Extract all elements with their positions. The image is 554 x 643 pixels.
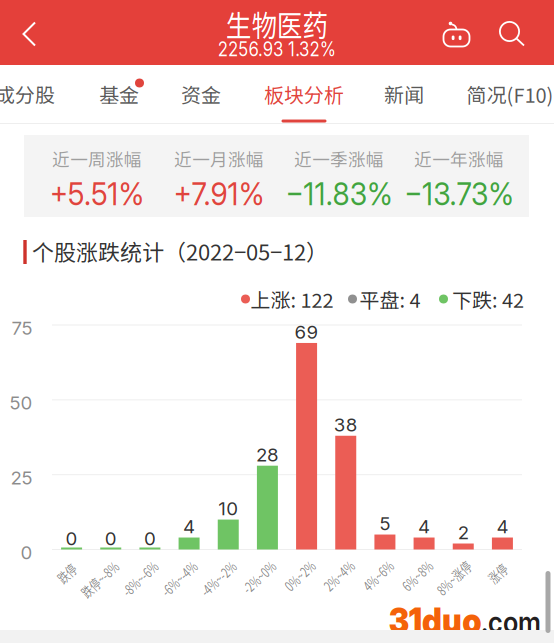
staticText: 板块分析 (264, 79, 344, 108)
staticText: 4 (183, 515, 195, 538)
staticText: +5.51% (42, 174, 152, 214)
staticText: 28 (256, 443, 279, 466)
staticText: +7.91% (166, 174, 272, 214)
staticText: 新闻 (384, 79, 424, 108)
staticText: 0 (66, 527, 78, 550)
staticText: −13.73% (395, 174, 523, 214)
staticText: 2%~4% (313, 565, 365, 586)
staticText: 0 (144, 527, 156, 550)
staticText: 69 (295, 321, 319, 343)
button[interactable]: 返回 (2, 1, 56, 66)
staticText: 8%~涨停 (424, 567, 484, 588)
staticText: 50 (9, 391, 32, 414)
button[interactable]: 板块分析 (256, 64, 352, 123)
staticText: 2256.93 1.32% (202, 36, 352, 62)
button[interactable]: 搜索 (487, 1, 537, 66)
staticText: 涨停 (483, 563, 513, 584)
staticText: 平盘: 4 (359, 284, 420, 313)
button[interactable]: 基金 (81, 64, 157, 123)
staticText: 生物医药 (213, 1, 341, 47)
staticText: 25 (10, 466, 32, 489)
button[interactable]: 智能助手 (432, 1, 482, 66)
button[interactable]: 资金 (163, 64, 239, 123)
staticText: 4 (418, 515, 430, 538)
staticText: 0 (105, 527, 117, 550)
staticText: 4%~6% (352, 565, 404, 586)
staticText: -8%~-6% (109, 568, 171, 589)
staticText: -2%~0% (230, 566, 287, 587)
staticText: 4 (496, 515, 508, 538)
staticText: 2 (458, 521, 469, 544)
staticText: -4%~-2% (187, 568, 249, 589)
staticText: 基金 (99, 79, 139, 108)
staticText: 跌停 (52, 563, 82, 584)
button[interactable]: 简况(F10) (455, 64, 554, 123)
button[interactable]: 新闻 (366, 64, 442, 123)
staticText: 0%~2% (274, 565, 326, 586)
staticText: 0 (20, 541, 32, 564)
staticText: 上涨: 122 (250, 284, 333, 313)
staticText: 个股涨跌统计（2022−05−12） (32, 235, 328, 267)
staticText: 6%~8% (391, 565, 443, 586)
staticText: 近一周涨幅 (49, 145, 144, 172)
staticText: 近一月涨幅 (171, 145, 266, 172)
staticText: 下跌: 42 (452, 284, 524, 313)
staticText: -6%~-4% (148, 568, 210, 589)
staticText: .com (477, 604, 545, 640)
staticText: 近一年涨幅 (411, 145, 506, 172)
staticText: 10 (218, 497, 238, 520)
staticText: 跌停~-8% (67, 568, 132, 590)
staticText: 资金 (181, 79, 221, 108)
staticText: 近一季涨幅 (291, 145, 386, 172)
staticText: 75 (11, 317, 32, 339)
button[interactable]: 成分股 (0, 64, 70, 123)
staticText: 38 (334, 413, 358, 436)
staticText: 31duo (382, 599, 488, 642)
staticText: 5 (379, 512, 390, 535)
staticText: −11.83% (276, 174, 401, 214)
staticText: 简况(F10) (466, 79, 553, 108)
staticText: 成分股 (0, 79, 55, 108)
